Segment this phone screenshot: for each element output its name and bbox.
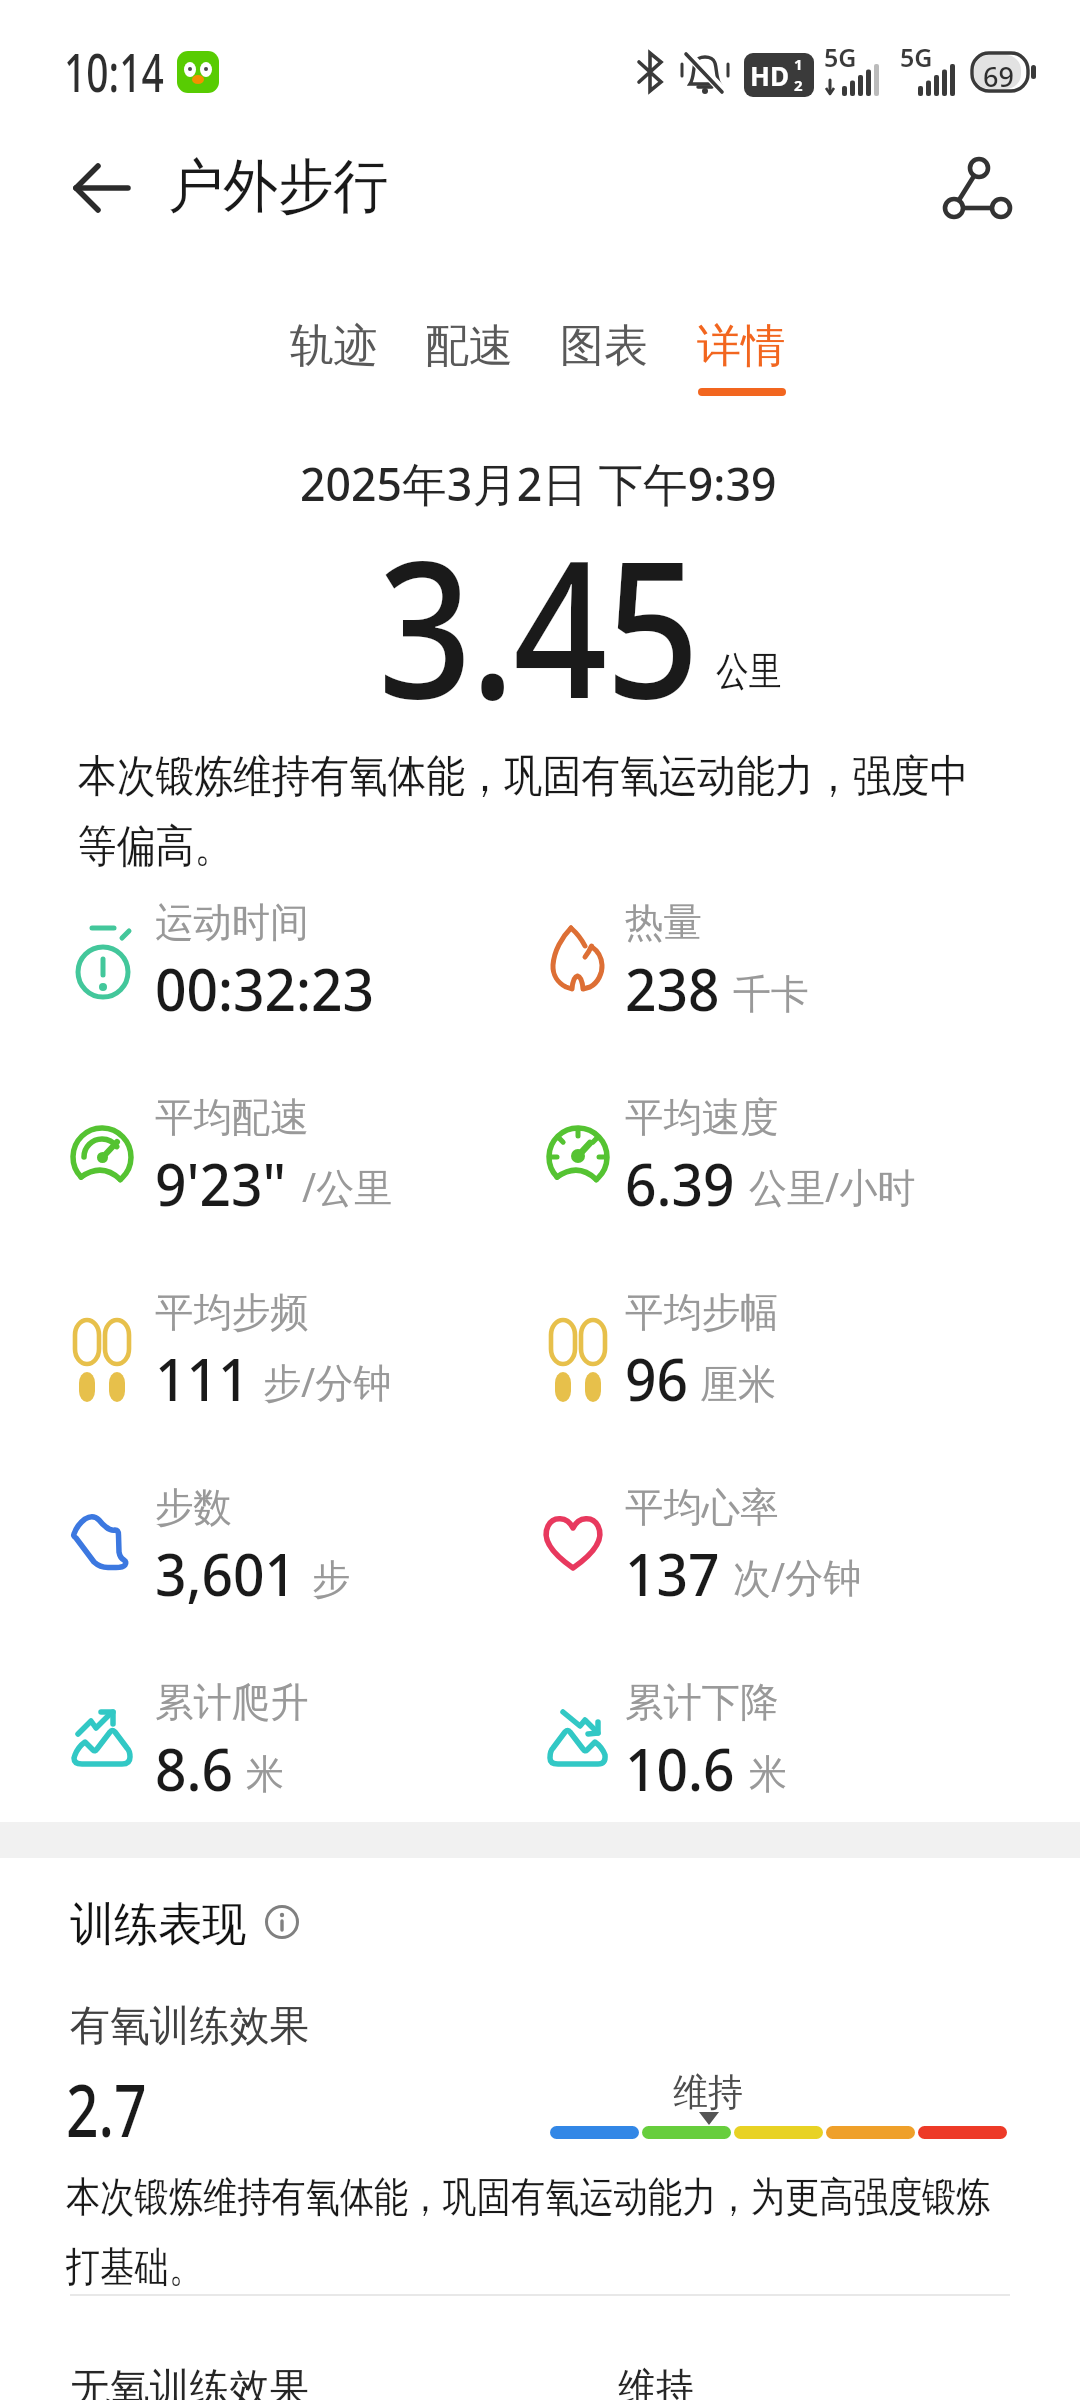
staticText: 3,601 — [155, 1534, 296, 1613]
staticText: 累计下降 — [625, 1677, 779, 1727]
staticText: 平均步幅 — [625, 1287, 779, 1337]
staticText: 公里/小时 — [749, 1159, 915, 1214]
staticText: 10.6 — [625, 1729, 735, 1808]
staticText: 平均速度 — [625, 1092, 779, 1142]
staticText: 户外步行 — [168, 150, 388, 223]
staticText: HD — [750, 58, 789, 93]
staticText: 千卡 — [733, 969, 809, 1019]
staticText: 无氧训练效果 — [70, 2363, 309, 2400]
staticText: 轨迹 — [290, 318, 378, 375]
button[interactable]: 详情 — [697, 318, 789, 398]
staticText: 维持 — [618, 2363, 694, 2400]
staticText: 有氧训练效果 — [70, 2000, 309, 2053]
staticText: /公里 — [302, 1159, 392, 1214]
staticText: 步 — [312, 1554, 350, 1604]
button[interactable]: 配速 — [425, 318, 515, 380]
staticText: 热量 — [625, 897, 702, 947]
button[interactable]: 轨迹 — [290, 318, 380, 380]
staticText: 运动时间 — [155, 897, 309, 947]
staticText: 图表 — [560, 318, 648, 375]
staticText: 10:14 — [64, 36, 164, 107]
staticText: 5G — [900, 40, 933, 74]
staticText: 米 — [246, 1749, 284, 1799]
staticText: 238 — [625, 949, 720, 1028]
staticText: 步/分钟 — [263, 1354, 391, 1409]
staticText: 次/分钟 — [733, 1549, 861, 1604]
staticText: 6.39 — [625, 1144, 735, 1223]
staticText: 00:32:23 — [155, 949, 374, 1028]
staticText: 96 — [625, 1339, 689, 1418]
button[interactable] — [66, 158, 134, 218]
staticText: 本次锻炼维持有氧体能，巩固有氧运动能力，强度中 等偏高。 — [78, 749, 969, 874]
staticText: 平均配速 — [155, 1092, 309, 1142]
button[interactable] — [938, 152, 1014, 222]
staticText: 配速 — [425, 318, 513, 375]
staticText: 1 — [794, 54, 803, 74]
button[interactable] — [264, 1904, 300, 1940]
staticText: 2025年3月2日 下午9:39 — [300, 452, 777, 515]
staticText: 5G — [824, 40, 857, 74]
staticText: 69 — [983, 58, 1014, 95]
button[interactable]: 图表 — [560, 318, 650, 380]
staticText: 训练表现 — [70, 1896, 247, 1954]
staticText: 3.45 — [378, 495, 698, 754]
staticText: 平均步频 — [155, 1287, 309, 1337]
staticText: 111 — [155, 1339, 250, 1418]
staticText: 厘米 — [700, 1359, 776, 1409]
staticText: 累计爬升 — [155, 1677, 309, 1727]
staticText: 2 — [794, 75, 803, 95]
staticText: 9'23" — [155, 1144, 287, 1223]
staticText: 平均心率 — [625, 1482, 779, 1532]
staticText: 详情 — [697, 318, 785, 375]
staticText: 米 — [749, 1749, 787, 1799]
staticText: 8.6 — [155, 1729, 234, 1808]
staticText: 维持 — [673, 2068, 743, 2116]
staticText: 137 — [625, 1534, 720, 1613]
staticText: 2.7 — [66, 2059, 147, 2158]
staticText: 步数 — [155, 1482, 232, 1532]
staticText: 公里 — [716, 646, 782, 696]
staticText: 本次锻炼维持有氧体能，巩固有氧运动能力，为更高强度锻炼 打基础。 — [66, 2172, 990, 2293]
